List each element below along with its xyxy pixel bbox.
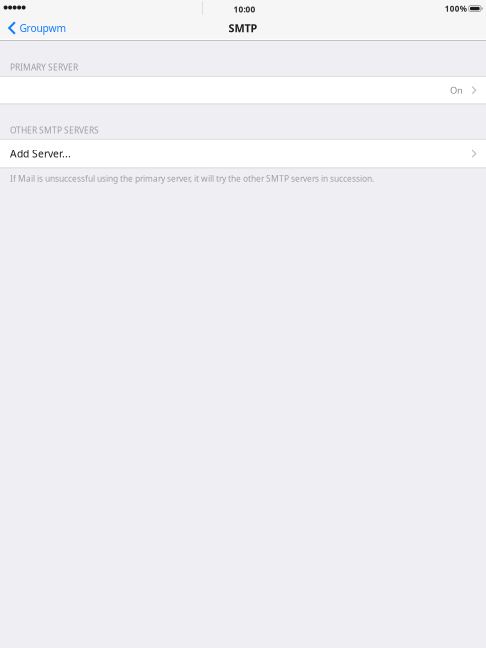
staticText: Add Server... (10, 147, 71, 161)
staticText: 10:00 (233, 4, 255, 15)
staticText: 100% (445, 3, 467, 14)
button[interactable]: Add Server... (0, 140, 486, 167)
staticText: If Mail is unsuccessful using the primar… (10, 173, 374, 184)
button[interactable]: On (0, 77, 486, 103)
staticText: Groupwm (20, 21, 67, 35)
staticText: OTHER SMTP SERVERS (10, 124, 99, 136)
button[interactable]: Groupwm (0, 16, 75, 40)
staticText: On (450, 84, 463, 96)
staticText: PRIMARY SERVER (10, 61, 78, 73)
staticText: SMTP (228, 21, 257, 35)
